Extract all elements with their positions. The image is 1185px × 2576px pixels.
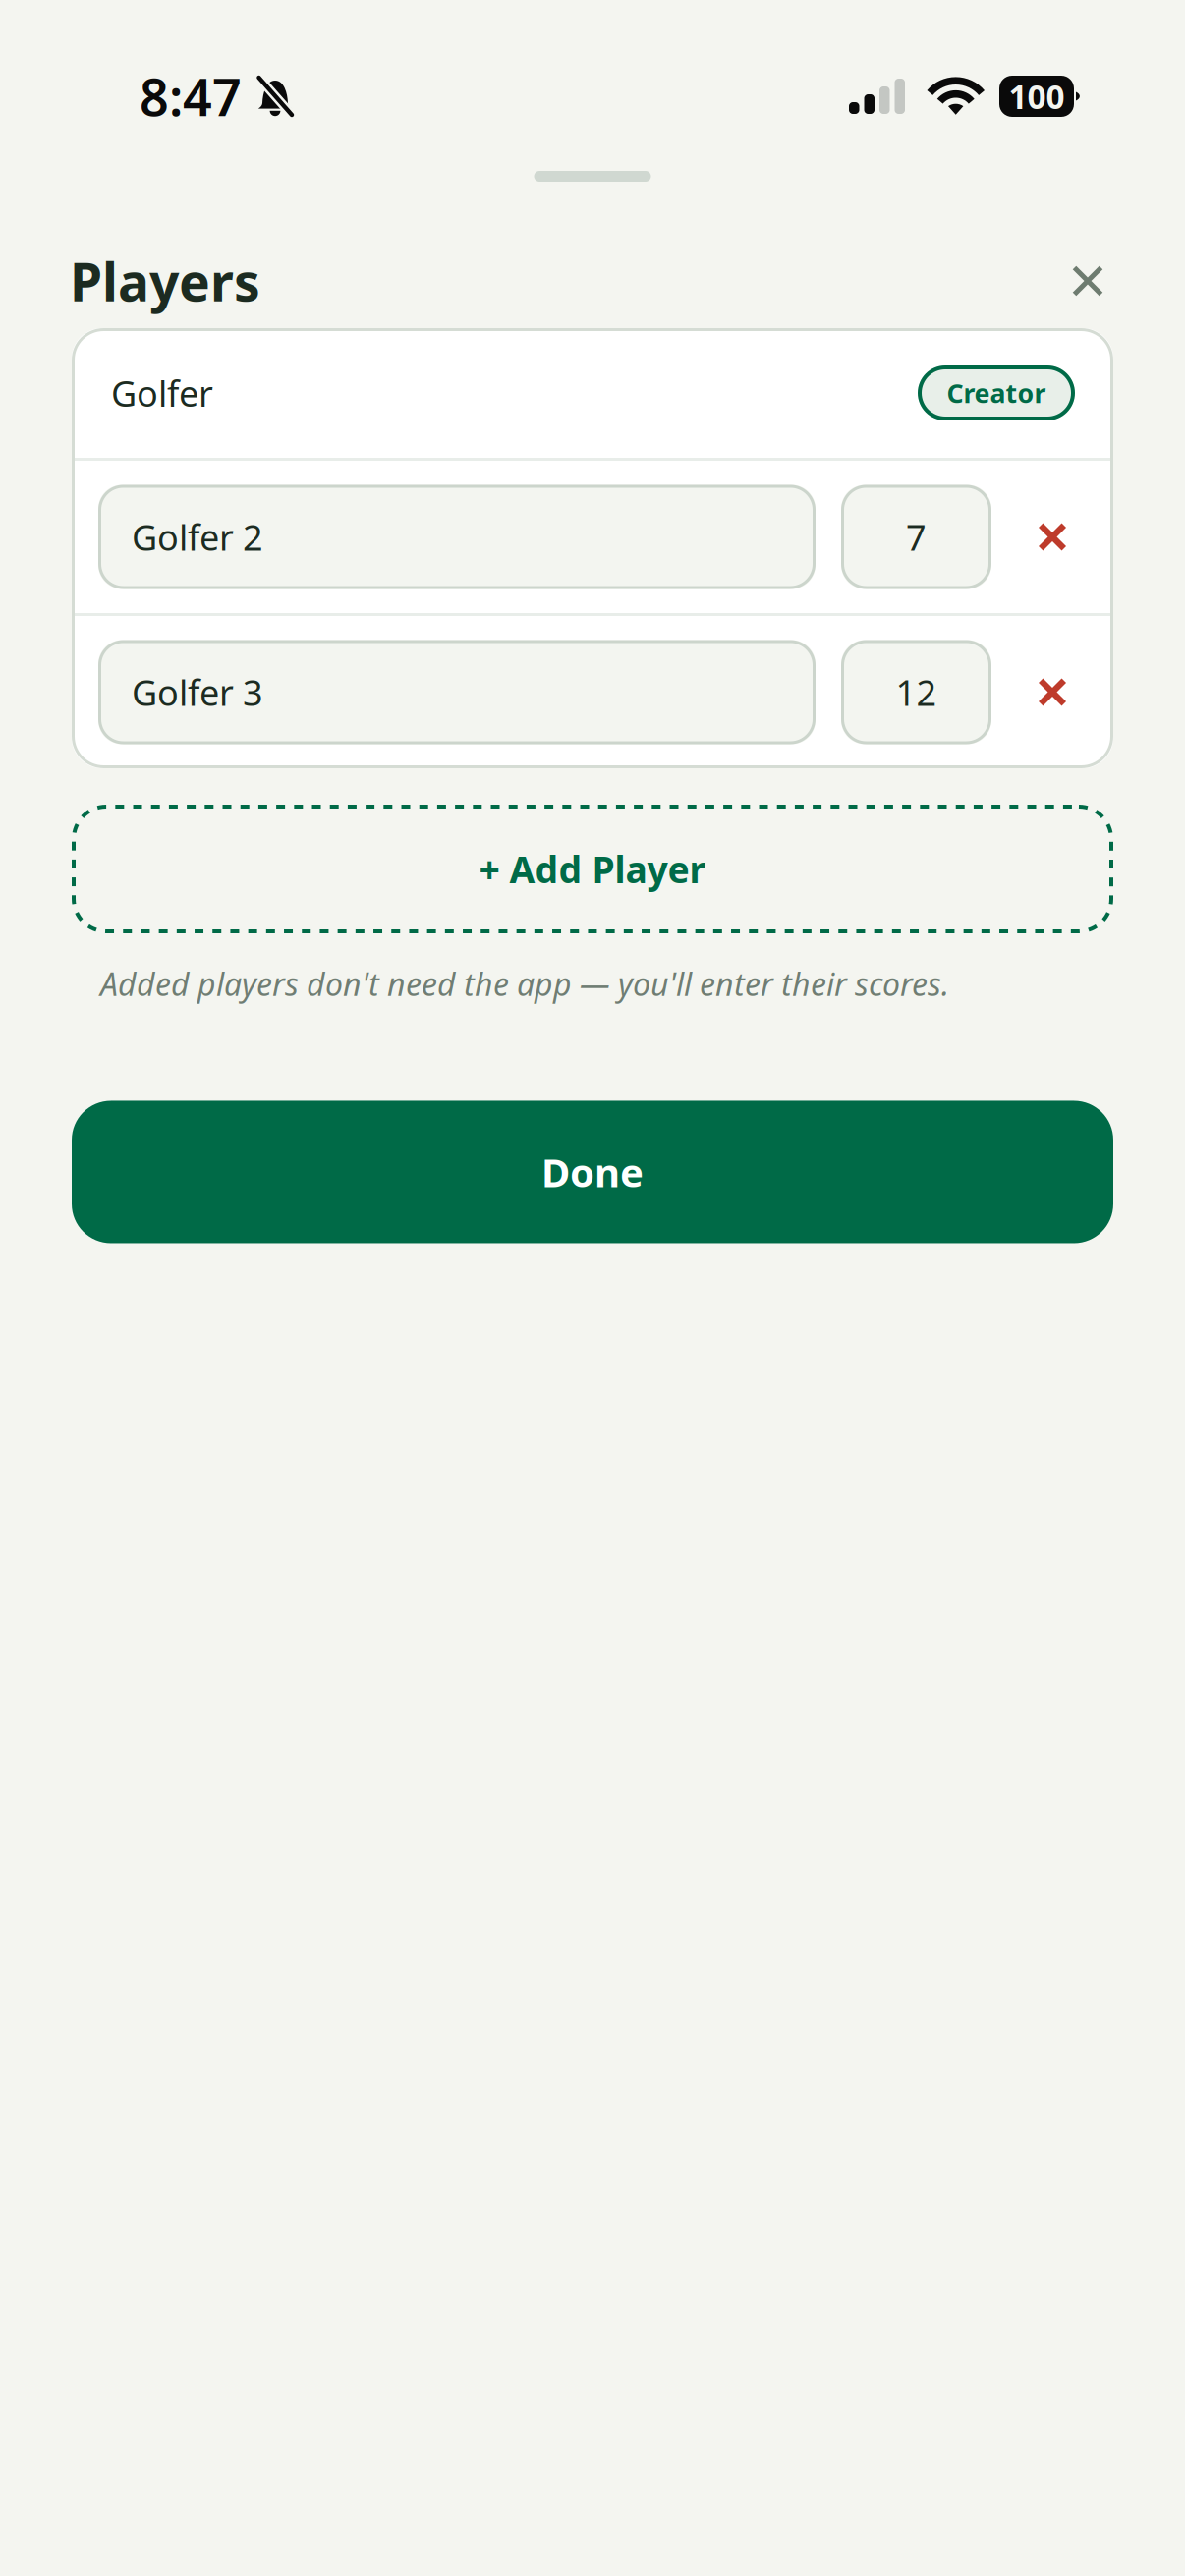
staticText: 100: [1009, 75, 1065, 118]
staticText: Golfer 3: [132, 669, 263, 716]
staticText: Golfer 2: [132, 513, 263, 560]
staticText: 12: [896, 669, 937, 716]
staticText: 8:47: [140, 62, 242, 130]
button[interactable]: Close: [1048, 242, 1127, 320]
staticText: Added players don't need the app — you'l…: [100, 963, 949, 1005]
staticText: + Add Player: [479, 845, 706, 893]
button[interactable]: Remove Golfer 3: [991, 631, 1113, 753]
staticText: Players: [70, 246, 260, 316]
staticText: Golfer: [111, 370, 213, 416]
staticText: Done: [541, 1146, 644, 1198]
button[interactable]: Done: [72, 1101, 1113, 1243]
staticText: Creator: [947, 376, 1046, 410]
button[interactable]: + Add Player: [72, 805, 1113, 933]
button[interactable]: Remove Golfer 2: [991, 476, 1113, 598]
staticText: 7: [906, 513, 927, 560]
